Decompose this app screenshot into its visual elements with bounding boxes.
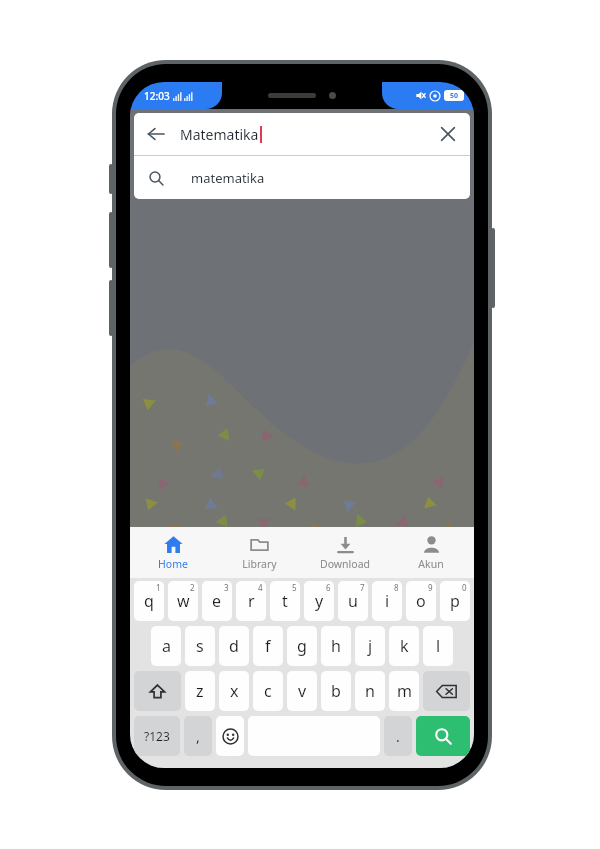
button[interactable]: u <box>338 581 368 621</box>
staticText: w <box>177 590 190 612</box>
staticText: r <box>248 590 255 612</box>
button[interactable]: p <box>440 581 470 621</box>
button[interactable]: Backspace <box>423 671 470 711</box>
staticText: 1 <box>156 582 161 593</box>
staticText: Matematika <box>180 125 259 144</box>
staticText: Akun <box>418 557 444 571</box>
staticText: p <box>450 590 460 612</box>
staticText: 12:03 <box>144 89 170 103</box>
staticText: 3 <box>224 582 229 593</box>
button[interactable]: j <box>355 626 385 666</box>
button[interactable]: x <box>219 671 249 711</box>
staticText: h <box>331 635 341 657</box>
staticText: 5 <box>292 582 297 593</box>
button[interactable]: Akun <box>388 527 474 578</box>
staticText: k <box>400 635 409 657</box>
button[interactable]: n <box>355 671 385 711</box>
staticText: l <box>436 635 441 657</box>
staticText: v <box>298 680 307 702</box>
staticText: 8 <box>394 582 399 593</box>
staticText: d <box>229 635 239 657</box>
staticText: m <box>397 680 412 702</box>
button[interactable]: g <box>287 626 317 666</box>
button[interactable]: r <box>236 581 266 621</box>
button[interactable]: Back <box>134 113 470 155</box>
button[interactable]: m <box>389 671 419 711</box>
button[interactable]: matematika <box>134 156 470 199</box>
button[interactable]: t <box>270 581 300 621</box>
button[interactable]: z <box>185 671 215 711</box>
button[interactable]: Search <box>416 716 470 756</box>
button[interactable]: i <box>372 581 402 621</box>
button[interactable]: e <box>202 581 232 621</box>
staticText: Download <box>320 557 370 571</box>
button[interactable]: Clear <box>432 118 464 150</box>
staticText: n <box>365 680 375 702</box>
button[interactable]: . <box>384 716 412 756</box>
button[interactable]: Emoji <box>216 716 244 756</box>
button[interactable]: Library <box>216 527 302 578</box>
staticText: matematika <box>191 169 265 187</box>
button[interactable]: w <box>168 581 198 621</box>
button[interactable]: v <box>287 671 317 711</box>
staticText: t <box>282 590 288 612</box>
button[interactable]: l <box>423 626 453 666</box>
button[interactable]: q <box>134 581 164 621</box>
staticText: y <box>315 590 324 612</box>
button[interactable]: h <box>321 626 351 666</box>
button[interactable]: b <box>321 671 351 711</box>
button[interactable]: c <box>253 671 283 711</box>
staticText: Library <box>242 557 277 571</box>
button[interactable]: ?123 <box>134 716 180 756</box>
button[interactable]: y <box>304 581 334 621</box>
staticText: , <box>196 727 200 746</box>
button[interactable]: f <box>253 626 283 666</box>
button[interactable]: o <box>406 581 436 621</box>
staticText: Home <box>158 557 188 571</box>
staticText: 9 <box>428 582 433 593</box>
staticText: u <box>348 590 358 612</box>
staticText: o <box>416 590 426 612</box>
staticText: s <box>196 635 204 657</box>
staticText: 7 <box>360 582 365 593</box>
staticText: z <box>196 680 204 702</box>
staticText: 4 <box>258 582 263 593</box>
staticText: ?123 <box>144 728 170 744</box>
button[interactable]: s <box>185 626 215 666</box>
button[interactable]: Download <box>302 527 388 578</box>
staticText: f <box>265 635 271 657</box>
button[interactable]: Shift <box>134 671 181 711</box>
staticText: 2 <box>190 582 195 593</box>
staticText: . <box>396 727 400 746</box>
staticText: c <box>264 680 272 702</box>
button[interactable]: , <box>184 716 212 756</box>
button[interactable]: Home <box>130 527 216 578</box>
staticText: 0 <box>462 582 467 593</box>
staticText: g <box>297 635 307 657</box>
staticText: 50 <box>450 91 459 101</box>
staticText: a <box>162 635 171 657</box>
staticText: 6 <box>326 582 331 593</box>
staticText: b <box>331 680 341 702</box>
staticText: e <box>212 590 222 612</box>
staticText: x <box>230 680 239 702</box>
staticText: j <box>368 635 373 657</box>
button[interactable]: a <box>151 626 181 666</box>
button[interactable]: d <box>219 626 249 666</box>
button[interactable]: Back <box>140 118 172 150</box>
button[interactable]: k <box>389 626 419 666</box>
staticText: q <box>144 590 154 612</box>
staticText: i <box>385 590 390 612</box>
